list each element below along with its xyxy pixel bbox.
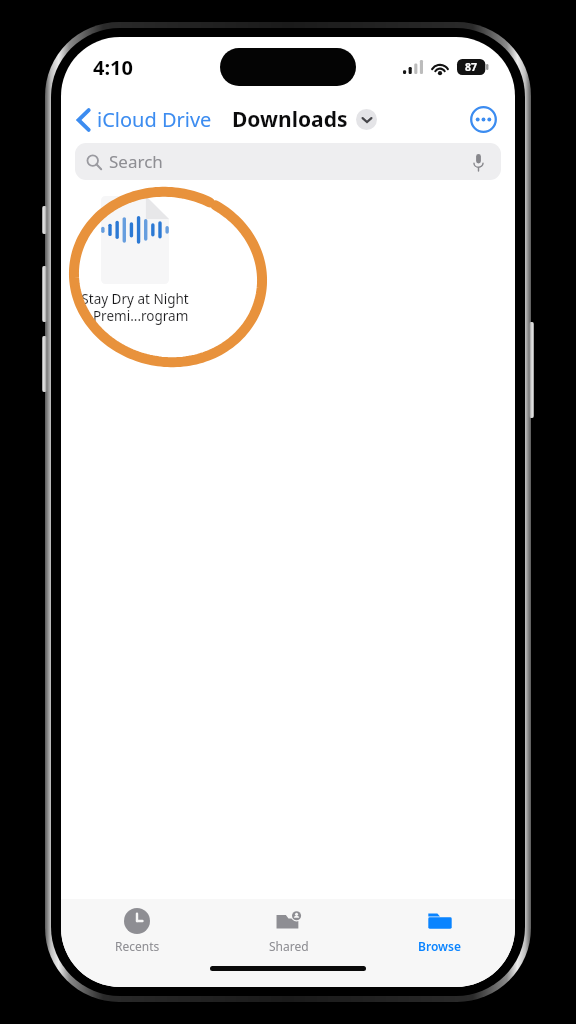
staticText: 4:10 bbox=[93, 54, 133, 81]
button[interactable]: More options bbox=[467, 103, 499, 135]
button[interactable]: Shared bbox=[213, 899, 364, 959]
button[interactable]: Browse bbox=[364, 899, 515, 959]
button[interactable]: Stay Dry at Night 1 Premi...rogram bbox=[71, 192, 199, 329]
staticText: Recents bbox=[115, 938, 160, 954]
staticText: iCloud Drive bbox=[97, 106, 212, 133]
button[interactable]: Downloads bbox=[232, 101, 377, 138]
staticText: Downloads bbox=[232, 105, 348, 134]
staticText: 87 bbox=[465, 60, 478, 74]
staticText: Browse bbox=[418, 938, 461, 954]
button[interactable]: Recents bbox=[61, 899, 213, 959]
staticText: Stay Dry at Night 1 Premi...rogram bbox=[81, 290, 189, 325]
button[interactable]: iCloud Drive bbox=[73, 101, 216, 138]
staticText: Search bbox=[109, 150, 163, 173]
button[interactable]: Voice search bbox=[467, 151, 489, 173]
button[interactable]: Search bbox=[75, 143, 501, 180]
staticText: Shared bbox=[269, 938, 309, 954]
